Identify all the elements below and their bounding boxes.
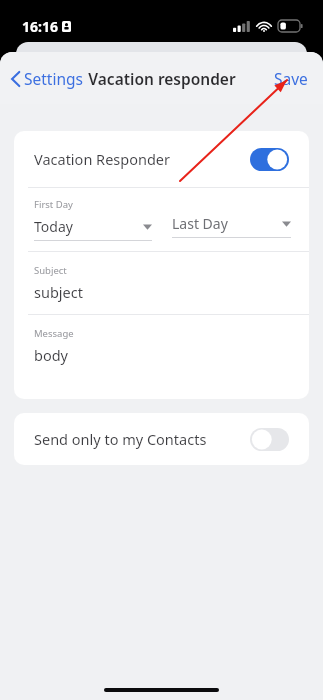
button[interactable]: Save: [267, 62, 315, 95]
button[interactable]: Vacation Responder: [14, 131, 309, 187]
staticText: First Day: [34, 198, 73, 211]
button[interactable]: Toggle off: [250, 428, 289, 451]
staticText: 16:16: [22, 17, 58, 36]
staticText: Vacation responder: [88, 68, 236, 89]
staticText: Message: [34, 327, 74, 340]
button[interactable]: Today: [34, 217, 152, 241]
button[interactable]: Message: [14, 315, 309, 399]
staticText: Send only to my Contacts: [34, 429, 207, 449]
button[interactable]: Toggle on: [250, 148, 289, 171]
staticText: Save: [274, 68, 308, 89]
button[interactable]: Settings: [6, 62, 88, 95]
staticText: body: [34, 345, 69, 365]
button[interactable]: Last Day: [172, 214, 291, 238]
button[interactable]: Send only to my Contacts: [14, 413, 309, 465]
staticText: Today: [34, 217, 73, 236]
staticText: Vacation Responder: [34, 149, 170, 169]
button[interactable]: Subject: [14, 252, 309, 314]
staticText: subject: [34, 282, 83, 302]
staticText: Subject: [34, 264, 67, 277]
staticText: Last Day: [172, 214, 228, 233]
staticText: Settings: [24, 68, 83, 89]
